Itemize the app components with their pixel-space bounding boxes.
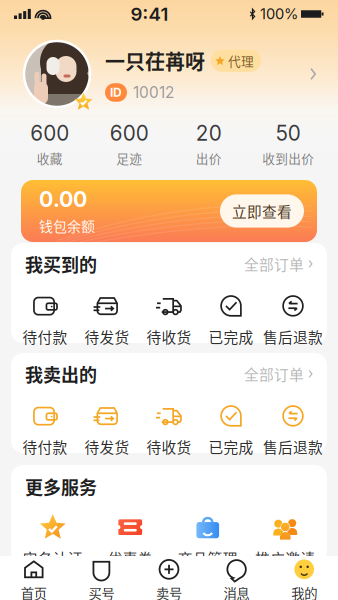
button[interactable]: 待收货 <box>138 402 200 459</box>
staticText: 实名认证 <box>23 547 83 569</box>
staticText: ID <box>110 85 122 100</box>
staticText: 全部订单 <box>244 253 304 274</box>
button[interactable]: 首页 <box>0 553 68 600</box>
button[interactable]: 50 <box>248 121 328 167</box>
button[interactable]: 待发货 <box>76 402 138 459</box>
button[interactable]: 待发货 <box>76 292 138 349</box>
button[interactable]: 已完成 <box>200 402 262 459</box>
staticText: 出价 <box>196 149 222 167</box>
staticText: 100% <box>260 5 298 23</box>
button[interactable]: 立即查看 <box>220 194 304 228</box>
button[interactable]: 全部订单 <box>244 253 313 274</box>
staticText: 我买到的 <box>25 251 97 277</box>
staticText: 卖号 <box>156 583 182 600</box>
staticText: 一只茌苒呀 <box>105 46 205 75</box>
staticText: 待收货 <box>146 326 191 347</box>
staticText: 收藏 <box>37 149 63 167</box>
staticText: 买号 <box>88 583 114 600</box>
staticText: 收到出价 <box>262 149 314 167</box>
staticText: 我卖出的 <box>25 361 97 387</box>
staticText: 待收货 <box>146 436 191 457</box>
button[interactable]: 已完成 <box>200 292 262 349</box>
button[interactable]: 实名认证 <box>14 513 91 569</box>
staticText: 0.00 <box>39 186 87 212</box>
staticText: 20 <box>196 121 222 146</box>
button[interactable]: 全部订单 <box>244 363 313 384</box>
button[interactable]: 600 <box>89 121 169 167</box>
button[interactable]: 一只茌苒呀 <box>0 28 338 120</box>
staticText: 600 <box>30 121 69 146</box>
staticText: 已完成 <box>208 436 253 457</box>
staticText: 我的 <box>291 583 317 600</box>
button[interactable]: 20 <box>169 121 248 167</box>
button[interactable]: 我的 <box>270 553 338 600</box>
staticText: 钱包余额 <box>39 215 95 236</box>
staticText: 全部订单 <box>244 363 304 384</box>
staticText: 9:41 <box>130 3 168 25</box>
button[interactable]: 优惠券 <box>91 513 169 569</box>
button[interactable]: 待收货 <box>138 292 200 349</box>
button[interactable]: 600 <box>10 121 89 167</box>
staticText: 50 <box>276 121 301 146</box>
staticText: 待发货 <box>84 326 129 347</box>
staticText: 售后退款 <box>263 326 323 347</box>
staticText: 待付款 <box>22 436 67 457</box>
staticText: 商品管理 <box>178 547 238 569</box>
staticText: 代理 <box>228 52 254 70</box>
button[interactable]: 商品管理 <box>169 513 246 569</box>
staticText: 推广邀请 <box>255 547 315 569</box>
staticText: 已完成 <box>208 326 253 347</box>
staticText: 优惠券 <box>108 547 153 569</box>
button[interactable]: 待付款 <box>14 402 76 459</box>
button[interactable]: 待付款 <box>14 292 76 349</box>
staticText: 首页 <box>21 583 47 600</box>
staticText: 售后退款 <box>263 436 323 457</box>
staticText: 消息 <box>224 583 250 600</box>
button[interactable]: 买号 <box>68 553 135 600</box>
button[interactable]: 消息 <box>203 553 270 600</box>
staticText: 立即查看 <box>232 200 292 222</box>
staticText: 更多服务 <box>25 473 97 499</box>
button[interactable]: 卖号 <box>135 553 203 600</box>
button[interactable]: 推广邀请 <box>246 513 324 569</box>
staticText: 待发货 <box>84 436 129 457</box>
staticText: 足迹 <box>116 149 142 167</box>
button[interactable]: 售后退款 <box>262 292 324 349</box>
button[interactable]: 售后退款 <box>262 402 324 459</box>
staticText: 600 <box>110 121 149 146</box>
staticText: 待付款 <box>22 326 67 347</box>
staticText: 10012 <box>133 83 174 102</box>
